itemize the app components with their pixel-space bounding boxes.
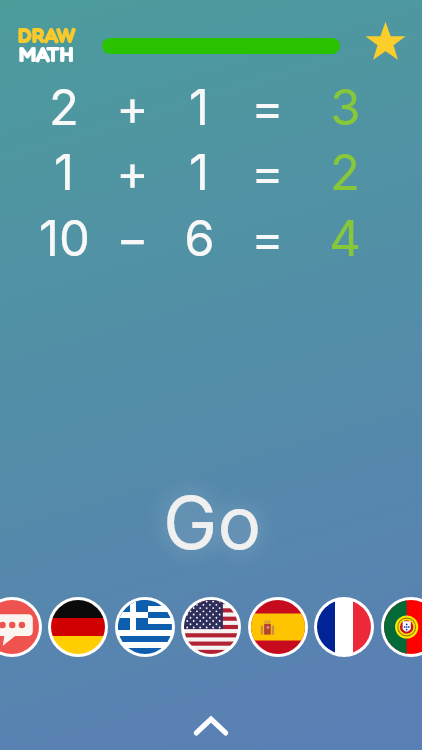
staticText: + bbox=[116, 143, 149, 202]
button[interactable]: Flag 2 bbox=[115, 597, 175, 657]
button[interactable]: 2 bbox=[0, 75, 422, 139]
button[interactable]: Flag 4 bbox=[248, 597, 308, 657]
button[interactable]: Flag 3 bbox=[181, 597, 241, 657]
staticText: 2 bbox=[330, 143, 360, 202]
staticText: 6 bbox=[184, 209, 215, 268]
staticText: 3 bbox=[330, 78, 361, 137]
button[interactable]: Go bbox=[147, 472, 277, 572]
button[interactable]: Flag 1 bbox=[48, 597, 108, 657]
button[interactable]: Expand bbox=[181, 700, 241, 748]
staticText: = bbox=[251, 143, 284, 202]
button[interactable]: Flag 5 bbox=[314, 597, 374, 657]
staticText: 10 bbox=[39, 209, 90, 268]
button[interactable]: Flag 6 bbox=[381, 597, 422, 657]
staticText: = bbox=[251, 209, 284, 268]
staticText: 1 bbox=[189, 78, 209, 137]
staticText: 1 bbox=[189, 143, 209, 202]
staticText: MATH bbox=[19, 42, 74, 67]
button[interactable]: 10 bbox=[0, 206, 422, 270]
staticText: DRAW bbox=[18, 23, 77, 48]
button[interactable]: Language bbox=[0, 597, 42, 657]
staticText: 1 bbox=[54, 143, 74, 202]
staticText: 2 bbox=[49, 78, 79, 137]
staticText: + bbox=[116, 78, 149, 137]
button[interactable]: Stars earned bbox=[368, 24, 403, 59]
staticText: Go bbox=[163, 478, 262, 566]
button[interactable]: Draw Math bbox=[17, 20, 81, 66]
staticText: 4 bbox=[329, 209, 361, 268]
button[interactable]: 1 bbox=[0, 140, 422, 204]
staticText: − bbox=[116, 209, 149, 268]
staticText: = bbox=[251, 78, 284, 137]
